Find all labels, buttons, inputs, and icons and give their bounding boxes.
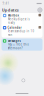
button[interactable]: Messages	[1, 38, 42, 51]
button[interactable]: Calendar	[1, 25, 42, 37]
staticText: Mailbox	[8, 14, 19, 17]
staticText: Weekly digest is ready	[8, 17, 30, 24]
staticText: 9:41	[2, 2, 9, 5]
staticText: Updates	[2, 7, 19, 13]
staticText: Hey — free this afternoon?	[8, 43, 29, 50]
staticText: Team standup in 10 min	[8, 30, 35, 37]
button[interactable]: Camera	[22, 79, 25, 82]
staticText: Calendar	[8, 26, 22, 29]
staticText: Messages	[8, 39, 21, 43]
button[interactable]: Mailbox	[1, 13, 42, 25]
